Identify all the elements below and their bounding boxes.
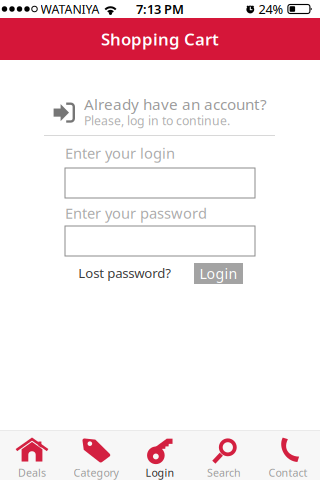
staticText: Search (207, 465, 241, 480)
staticText: Please, log in to continue. (84, 112, 230, 129)
button[interactable]: Lost password? (71, 261, 179, 285)
staticText: Deals (18, 465, 46, 480)
staticText: 24% (258, 0, 283, 17)
staticText: Category (73, 465, 118, 480)
staticText: Login (145, 465, 174, 480)
button[interactable]: Login (128, 430, 192, 480)
staticText: Enter your login (65, 143, 175, 163)
staticText: Already have an account? (84, 94, 267, 114)
staticText: Contact (268, 465, 307, 480)
staticText: Lost password? (78, 264, 171, 282)
button[interactable]: Category (64, 430, 128, 480)
button[interactable]: Contact (256, 430, 320, 480)
button[interactable]: Login (194, 263, 243, 284)
staticText: 7:13 PM (136, 0, 184, 17)
staticText: Login (199, 264, 237, 283)
button[interactable]: Deals (0, 430, 64, 480)
button[interactable]: Search (192, 430, 256, 480)
staticText: Shopping Cart (101, 28, 219, 50)
staticText: WATANIYA (40, 1, 99, 17)
staticText: Enter your password (65, 203, 207, 223)
